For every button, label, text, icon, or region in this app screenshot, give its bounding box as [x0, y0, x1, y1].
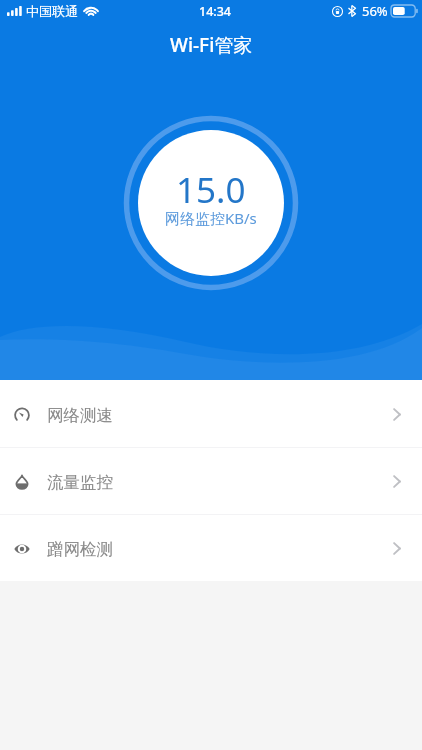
button[interactable]: 蹭网检测 — [0, 515, 422, 581]
staticText: 56% — [362, 2, 388, 20]
staticText: 中国联通 — [26, 3, 78, 19]
button[interactable]: 流量监控 — [0, 448, 422, 514]
staticText: Wi-Fi管家 — [170, 32, 253, 58]
button[interactable]: 网络测速 — [0, 381, 422, 447]
button[interactable]: 网络监控 15.0 KB/s — [123, 115, 299, 291]
staticText: 15.0 — [176, 166, 246, 214]
staticText: 14:34 — [199, 3, 232, 20]
staticText: 网络监控KB/s — [165, 208, 257, 228]
staticText: 蹭网检测 — [47, 539, 113, 560]
staticText: 网络测速 — [47, 405, 113, 426]
staticText: 流量监控 — [47, 472, 113, 493]
